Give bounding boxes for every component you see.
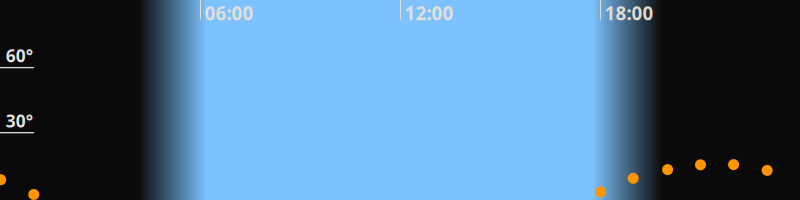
staticText: 60° [6,44,33,67]
staticText: 30° [6,109,33,132]
staticText: 18:00 [604,1,653,25]
staticText: 12:00 [404,1,453,25]
staticText: 06:00 [204,1,253,25]
